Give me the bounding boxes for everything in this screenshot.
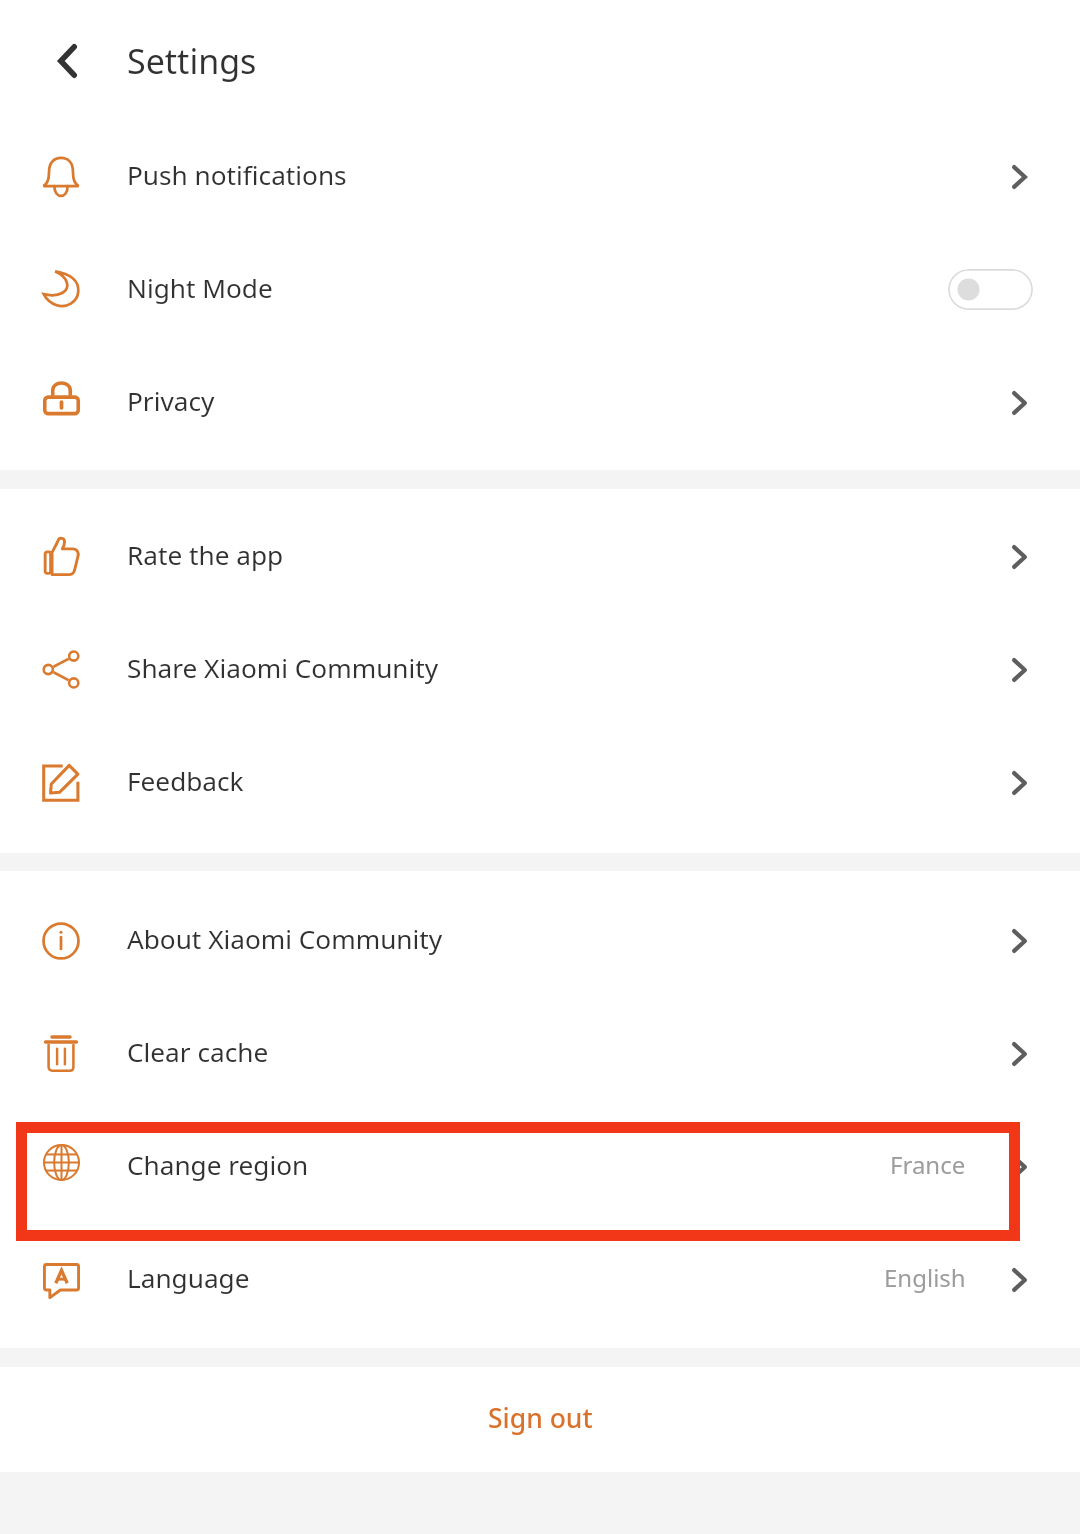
staticText: Push notifications [127, 157, 347, 193]
staticText: Rate the app [127, 537, 284, 573]
button[interactable]: Privacy [0, 346, 1080, 459]
staticText: Settings [127, 38, 257, 84]
button[interactable]: Night Mode [0, 233, 1080, 346]
staticText: Privacy [127, 383, 215, 419]
staticText: Feedback [127, 763, 244, 799]
button[interactable]: Rate the app [0, 500, 1080, 613]
staticText: Night Mode [127, 270, 273, 306]
staticText: Language [127, 1260, 250, 1296]
staticText: Share Xiaomi Community [127, 650, 439, 686]
button[interactable]: Back [0, 16, 112, 106]
button[interactable]: Change region [0, 1110, 1080, 1223]
staticText: About Xiaomi Community [127, 921, 443, 957]
button[interactable]: Night Mode toggle [948, 269, 1033, 310]
button[interactable]: Language [0, 1223, 1080, 1336]
button[interactable]: Push notifications [0, 120, 1080, 233]
staticText: Sign out [488, 1400, 593, 1436]
staticText: Clear cache [127, 1034, 269, 1070]
staticText: English [884, 1261, 966, 1294]
button[interactable]: About Xiaomi Community [0, 884, 1080, 997]
button[interactable]: Sign out [0, 1367, 1080, 1472]
staticText: France [890, 1148, 966, 1181]
staticText: Change region [127, 1147, 309, 1183]
button[interactable]: Clear cache [0, 997, 1080, 1110]
button[interactable]: Share Xiaomi Community [0, 613, 1080, 726]
button[interactable]: Feedback [0, 726, 1080, 839]
